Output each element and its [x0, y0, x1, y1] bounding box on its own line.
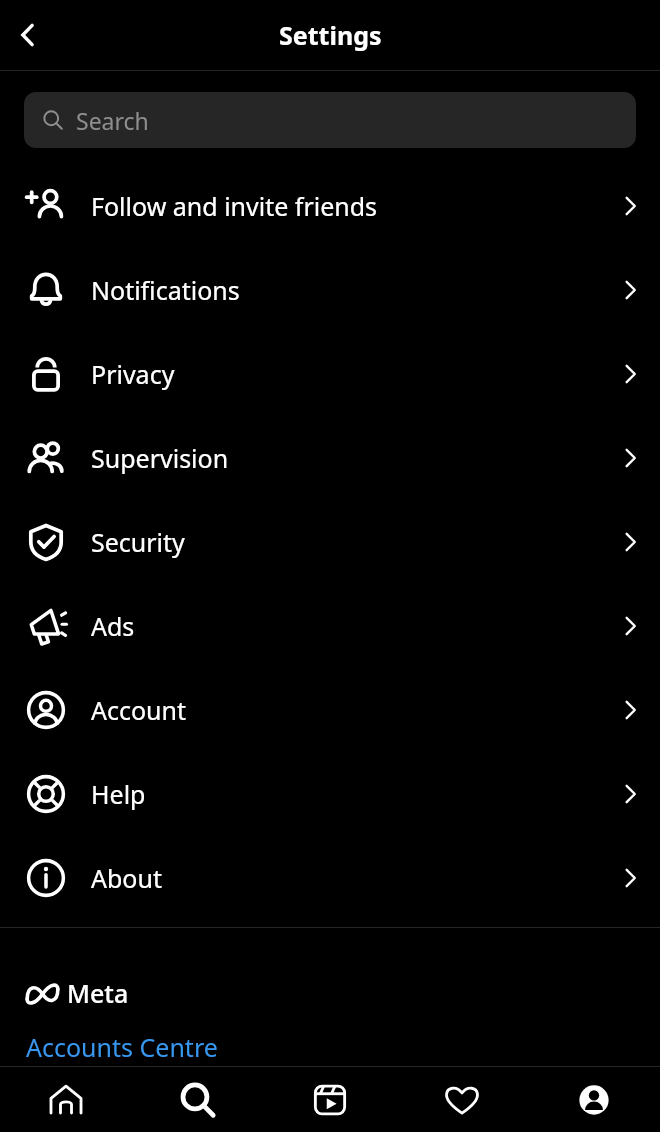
button[interactable]: Follow and invite friends	[0, 164, 660, 248]
staticText: About	[91, 861, 600, 895]
button[interactable]: Account	[0, 668, 660, 752]
staticText: Privacy	[91, 357, 600, 391]
staticText: Settings	[279, 18, 382, 52]
button[interactable]: About	[0, 836, 660, 920]
staticText: Supervision	[91, 441, 600, 475]
button[interactable]: Ads	[0, 584, 660, 668]
button[interactable]: Help	[0, 752, 660, 836]
staticText: Follow and invite friends	[91, 189, 600, 223]
button[interactable]: Search	[24, 92, 636, 148]
staticText: Help	[91, 777, 600, 811]
button[interactable]: Back	[6, 13, 50, 57]
button[interactable]: Search	[132, 1067, 264, 1132]
staticText: Notifications	[91, 273, 600, 307]
staticText: Search	[76, 105, 149, 136]
button[interactable]: Likes	[396, 1067, 528, 1132]
button[interactable]: Privacy	[0, 332, 660, 416]
button[interactable]: Profile	[528, 1067, 660, 1132]
staticText: Ads	[91, 609, 600, 643]
button[interactable]: Reels	[264, 1067, 396, 1132]
button[interactable]: Security	[0, 500, 660, 584]
staticText: Accounts Centre	[26, 1030, 218, 1064]
button[interactable]: Home	[0, 1067, 132, 1132]
button[interactable]: Accounts Centre	[0, 1028, 660, 1066]
button[interactable]: Notifications	[0, 248, 660, 332]
staticText: Account	[91, 693, 600, 727]
button[interactable]: Supervision	[0, 416, 660, 500]
staticText: Security	[91, 525, 600, 559]
staticText: Meta	[67, 976, 129, 1010]
